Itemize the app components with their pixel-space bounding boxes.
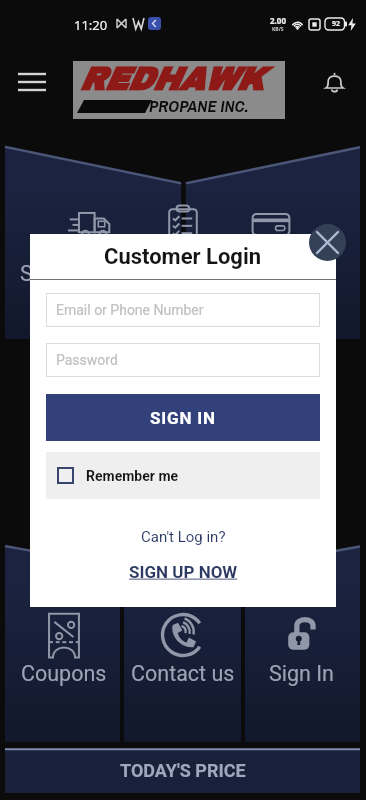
button[interactable]: Notifications xyxy=(314,62,354,102)
button[interactable]: SIGN IN xyxy=(46,394,320,441)
button[interactable]: Email or Phone Number xyxy=(46,293,320,327)
button[interactable]: SIGN UP NOW xyxy=(129,562,238,582)
staticText: REDHAWK xyxy=(79,62,263,97)
button[interactable]: Coupons xyxy=(5,546,122,742)
staticText: 11:20 xyxy=(74,16,108,34)
staticText: SIGN IN xyxy=(150,408,216,428)
button[interactable]: Password xyxy=(46,343,320,377)
button[interactable]: Remember me xyxy=(46,452,320,499)
staticText: Coupons xyxy=(21,661,107,686)
button[interactable]: Menu xyxy=(12,62,52,102)
staticText: Email or Phone Number xyxy=(56,302,204,318)
button[interactable]: TODAY'S PRICE xyxy=(5,748,360,793)
staticText: PROPANE INC. xyxy=(149,94,249,117)
button[interactable]: Contact us xyxy=(122,546,243,742)
staticText: Order xyxy=(156,261,209,286)
button[interactable]: Pay xyxy=(243,148,360,339)
button[interactable]: REDHAWK xyxy=(73,61,285,119)
button[interactable]: Close xyxy=(309,224,346,261)
staticText: Contact us xyxy=(131,661,235,686)
staticText: 2.00 xyxy=(270,15,286,26)
staticText: KB/S xyxy=(272,26,284,33)
staticText: Sign In xyxy=(269,661,334,686)
staticText: Schedule xyxy=(20,261,108,286)
button[interactable]: Sign In xyxy=(243,546,360,742)
staticText: TODAY'S PRICE xyxy=(120,760,246,781)
staticText: Pay xyxy=(284,261,320,286)
staticText: Remember me xyxy=(86,468,179,484)
button[interactable]: Can't Log in? xyxy=(141,528,226,546)
button[interactable]: Schedule xyxy=(5,148,122,339)
staticText: Password xyxy=(56,352,118,368)
staticText: Customer Login xyxy=(104,244,262,270)
staticText: 92 xyxy=(332,19,341,29)
button[interactable]: Order xyxy=(122,148,243,339)
